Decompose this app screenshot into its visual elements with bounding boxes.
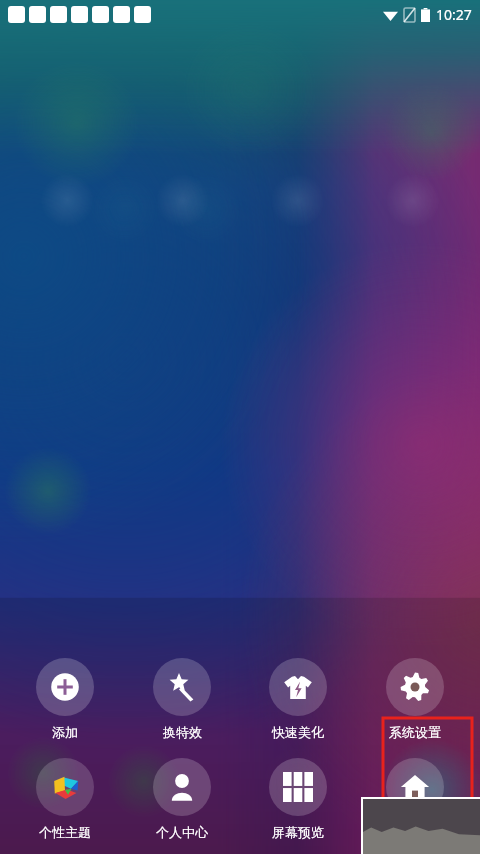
button[interactable]: 系统设置 — [363, 656, 467, 742]
button[interactable] — [363, 799, 480, 854]
other: Selected item — [0, 0, 480, 854]
staticText: 个性主题 — [39, 824, 91, 840]
staticText: 换特效 — [163, 724, 202, 740]
staticText: 系统设置 — [389, 724, 441, 740]
staticText: 主屏幕 — [396, 824, 435, 840]
button[interactable]: 主屏幕 — [363, 756, 467, 842]
button[interactable]: 屏幕预览 — [246, 756, 350, 842]
button[interactable]: 换特效 — [130, 656, 234, 742]
staticText: 屏幕预览 — [272, 824, 324, 840]
button[interactable]: 个性主题 — [13, 756, 117, 842]
staticText: 10:27 — [436, 5, 472, 24]
staticText: 个人中心 — [156, 824, 208, 840]
staticText: 快速美化 — [272, 724, 324, 740]
staticText: 添加 — [52, 724, 78, 740]
button[interactable]: 快速美化 — [246, 656, 350, 742]
button[interactable]: 添加 — [13, 656, 117, 742]
button[interactable]: 个人中心 — [130, 756, 234, 842]
